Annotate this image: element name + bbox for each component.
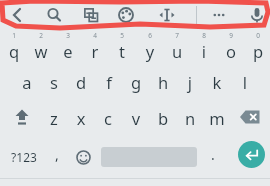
button[interactable]: k (204, 66, 230, 98)
staticText: b (150, 107, 176, 129)
button[interactable]: 7 (164, 30, 190, 62)
staticText: ?123 (4, 149, 44, 165)
button[interactable]: 3 (55, 30, 81, 62)
button[interactable]: Shift (8, 104, 36, 130)
button[interactable]: , (45, 144, 69, 170)
button[interactable]: x (68, 102, 94, 134)
staticText: 6 (137, 31, 163, 40)
button[interactable]: m (204, 102, 230, 134)
staticText: s (41, 71, 67, 93)
button[interactable]: . (202, 144, 224, 170)
button[interactable]: Voice input (248, 4, 266, 26)
staticText: 9 (218, 31, 244, 40)
staticText: 8 (191, 31, 217, 40)
staticText: d (68, 71, 94, 93)
button[interactable]: f (96, 66, 122, 98)
staticText: h (150, 71, 176, 93)
staticText: n (177, 107, 203, 129)
staticText: m (204, 107, 230, 129)
staticText: z (41, 107, 67, 129)
button[interactable]: l (232, 66, 258, 98)
staticText: y (137, 40, 163, 62)
staticText: 1 (1, 31, 27, 40)
staticText: a (14, 71, 40, 93)
staticText: 4 (82, 31, 108, 40)
staticText: t (109, 40, 135, 62)
button[interactable]: 5 (109, 30, 135, 62)
button[interactable]: Move cursor (158, 4, 176, 26)
staticText: k (204, 71, 230, 93)
staticText: q (1, 40, 27, 62)
button[interactable]: More options (210, 4, 228, 26)
staticText: 3 (55, 31, 81, 40)
staticText: u (164, 40, 190, 62)
button[interactable]: Enter (238, 141, 265, 168)
staticText: g (123, 71, 149, 93)
button[interactable]: 9 (218, 30, 244, 62)
staticText: w (28, 40, 54, 62)
staticText: , (45, 145, 69, 164)
staticText: f (96, 71, 122, 93)
button[interactable]: z (41, 102, 67, 134)
button[interactable]: d (68, 66, 94, 98)
staticText: e (55, 40, 81, 62)
staticText: x (68, 107, 94, 129)
button[interactable]: 1 (1, 30, 27, 62)
staticText: 2 (28, 31, 54, 40)
staticText: 7 (164, 31, 190, 40)
button[interactable]: g (123, 66, 149, 98)
button[interactable]: 2 (28, 30, 54, 62)
staticText: o (218, 40, 244, 62)
staticText: 0 (245, 31, 270, 40)
staticText: . (202, 145, 224, 164)
button[interactable]: Back (8, 4, 26, 26)
button[interactable]: ?123 (4, 144, 44, 170)
button[interactable]: v (123, 102, 149, 134)
button[interactable]: Backspace (236, 104, 264, 130)
staticText: r (82, 40, 108, 62)
button[interactable]: j (177, 66, 203, 98)
staticText: j (177, 71, 203, 93)
button[interactable]: 6 (137, 30, 163, 62)
button[interactable]: Search (45, 4, 63, 26)
button[interactable]: 4 (82, 30, 108, 62)
staticText: i (191, 40, 217, 62)
button[interactable]: Emoji (71, 144, 95, 170)
staticText: l (232, 71, 258, 93)
staticText: 5 (109, 31, 135, 40)
staticText: c (95, 107, 121, 129)
button[interactable]: 8 (191, 30, 217, 62)
button[interactable]: 0 (245, 30, 270, 62)
button[interactable]: c (95, 102, 121, 134)
staticText: p (245, 40, 270, 62)
button[interactable]: b (150, 102, 176, 134)
button[interactable]: n (177, 102, 203, 134)
staticText: v (123, 107, 149, 129)
button[interactable]: h (150, 66, 176, 98)
button[interactable]: Translate (82, 4, 100, 26)
button[interactable]: Themes (117, 4, 135, 26)
button[interactable]: a (14, 66, 40, 98)
button[interactable]: s (41, 66, 67, 98)
